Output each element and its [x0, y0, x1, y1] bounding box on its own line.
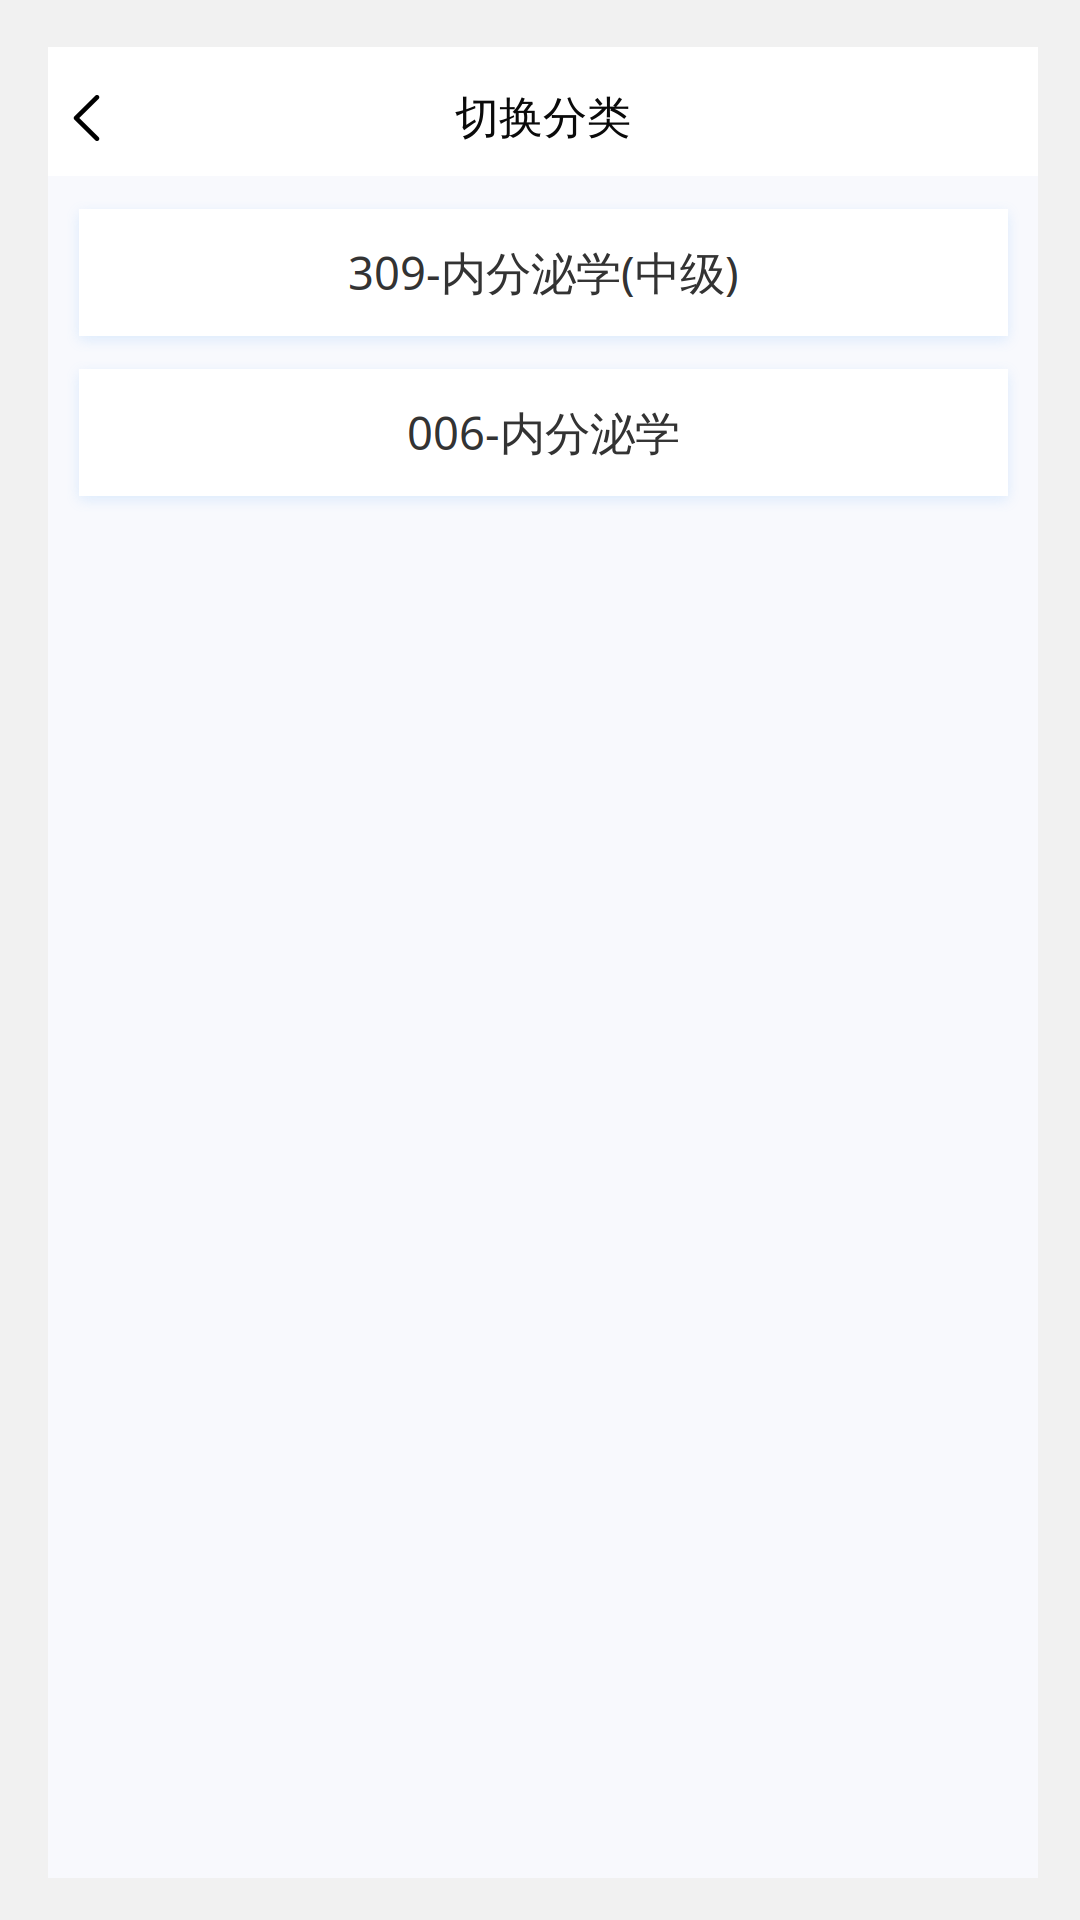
- staticText: 切换分类: [455, 91, 631, 145]
- button[interactable]: Back: [48, 47, 121, 176]
- button[interactable]: 309-内分泌学(中级): [79, 209, 1008, 336]
- staticText: 006-内分泌学: [407, 402, 680, 463]
- button[interactable]: 006-内分泌学: [79, 369, 1008, 496]
- staticText: 309-内分泌学(中级): [348, 242, 739, 303]
